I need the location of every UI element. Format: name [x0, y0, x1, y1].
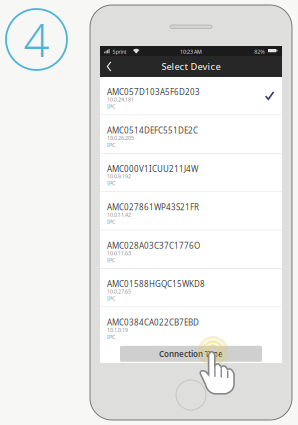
- button[interactable]: AMC000V1ICUU211J4W: [100, 154, 282, 192]
- staticText: Connection Type: [159, 348, 223, 359]
- button[interactable]: AMC0384CA022CB7EBD: [100, 307, 282, 346]
- staticText: AMC057D103A5F6D203: [107, 87, 200, 97]
- button[interactable]: AMC027861WP43S21FR: [100, 192, 282, 231]
- button[interactable]: Back: [100, 56, 118, 76]
- staticText: IPC: [107, 103, 115, 110]
- staticText: IPC: [107, 295, 115, 302]
- staticText: Sprint: [112, 48, 126, 55]
- staticText: IPC: [107, 257, 115, 264]
- button[interactable]: AMC0514DEFC551DE2C: [100, 115, 282, 154]
- staticText: 10.0.24.181: [107, 96, 134, 103]
- staticText: 10.1.0.19: [107, 326, 128, 333]
- staticText: Select Device: [161, 60, 220, 73]
- button[interactable]: AMC028A03C37C1776O: [100, 231, 282, 269]
- staticText: IPC: [107, 333, 115, 340]
- staticText: AMC000V1ICUU211J4W: [107, 163, 198, 174]
- staticText: 82%: [254, 48, 264, 55]
- staticText: 10.0.9.192: [107, 173, 131, 180]
- button[interactable]: Connection Type: [120, 346, 262, 362]
- staticText: 4: [23, 9, 49, 70]
- staticText: 10.0.27.65: [107, 288, 131, 295]
- button[interactable]: AMC01588HGQC15WKD8: [100, 269, 282, 307]
- button[interactable]: AMC057D103A5F6D203: [100, 77, 282, 115]
- staticText: IPC: [107, 141, 115, 148]
- staticText: AMC028A03C37C1776O: [107, 240, 200, 251]
- staticText: AMC027861WP43S21FR: [107, 202, 199, 212]
- staticText: 10.0.11.42: [107, 211, 131, 218]
- staticText: 10.0.11.63: [107, 250, 131, 257]
- staticText: 10:23 AM: [180, 48, 202, 55]
- staticText: AMC0384CA022CB7EBD: [107, 317, 199, 328]
- staticText: AMC01588HGQC15WKD8: [107, 279, 205, 289]
- staticText: IPC: [107, 218, 115, 225]
- staticText: IPC: [107, 180, 115, 187]
- staticText: AMC0514DEFC551DE2C: [107, 125, 198, 136]
- staticText: 10.0.26.205: [107, 134, 134, 141]
